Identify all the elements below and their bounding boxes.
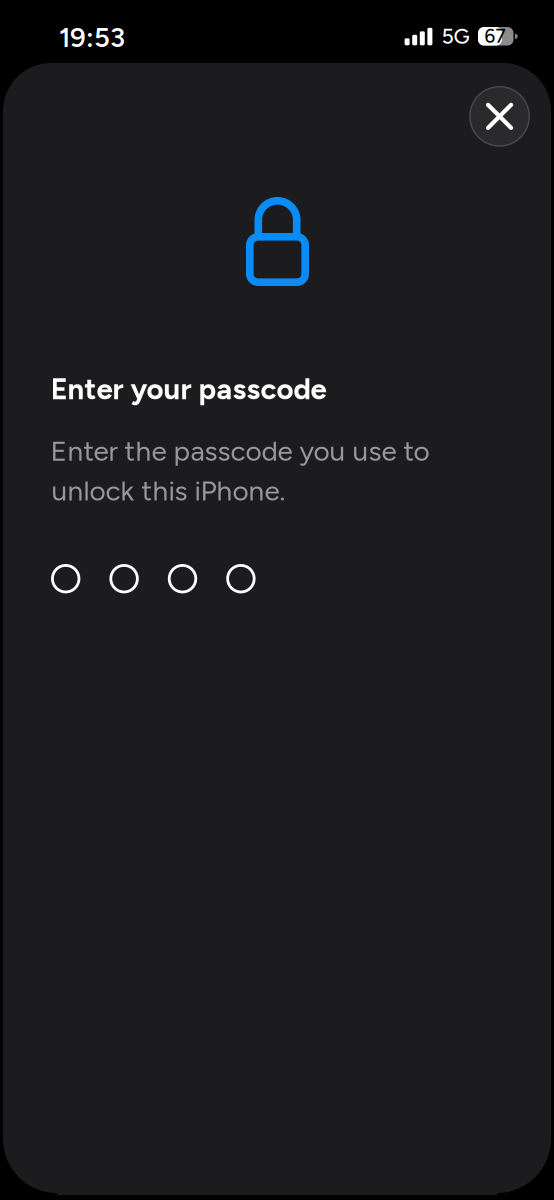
staticText: 19:53 bbox=[59, 21, 125, 54]
button[interactable]: Close bbox=[469, 86, 530, 146]
staticText: Enter your passcode bbox=[50, 371, 326, 407]
staticText: 67 bbox=[484, 25, 505, 47]
staticText: unlock this iPhone. bbox=[51, 474, 285, 507]
staticText: Enter the passcode you use to bbox=[50, 434, 429, 468]
staticText: 5G bbox=[441, 23, 469, 49]
